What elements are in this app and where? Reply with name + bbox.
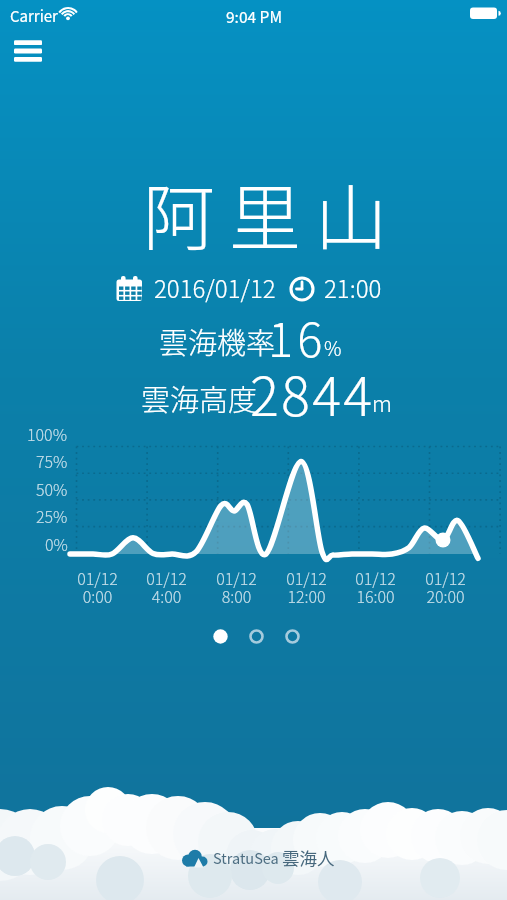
staticText: 01/12 12:00 — [286, 566, 327, 608]
staticText: 雲海機率 — [159, 320, 276, 362]
staticText: 01/12 4:00 — [146, 566, 187, 608]
staticText: 01/12 0:00 — [77, 566, 118, 608]
staticText: Carrier — [10, 5, 58, 27]
staticText: 25% — [36, 504, 68, 527]
staticText: 2844 — [250, 353, 375, 431]
staticText: 100% — [27, 422, 68, 445]
staticText: 01/12 20:00 — [425, 566, 466, 608]
staticText: 雲海人 — [282, 845, 335, 870]
staticText: 01/12 8:00 — [216, 566, 257, 608]
staticText: 雲海高度 — [141, 377, 258, 419]
staticText: 75% — [36, 449, 68, 472]
staticText: 阿里山 — [143, 160, 402, 264]
staticText: StratuSea — [213, 847, 279, 868]
staticText: 2016/01/12 — [154, 270, 276, 305]
button[interactable] — [6, 32, 52, 72]
button[interactable] — [213, 629, 228, 644]
staticText: % — [324, 333, 342, 361]
staticText: m — [372, 386, 392, 418]
button[interactable] — [285, 629, 300, 644]
staticText: 21:00 — [324, 270, 382, 305]
staticText: 9:04 PM — [226, 5, 282, 27]
staticText: 16 — [268, 302, 327, 370]
staticText: 0% — [45, 532, 68, 555]
staticText: 01/12 16:00 — [355, 566, 396, 608]
button[interactable] — [249, 629, 264, 644]
staticText: 50% — [36, 477, 68, 500]
